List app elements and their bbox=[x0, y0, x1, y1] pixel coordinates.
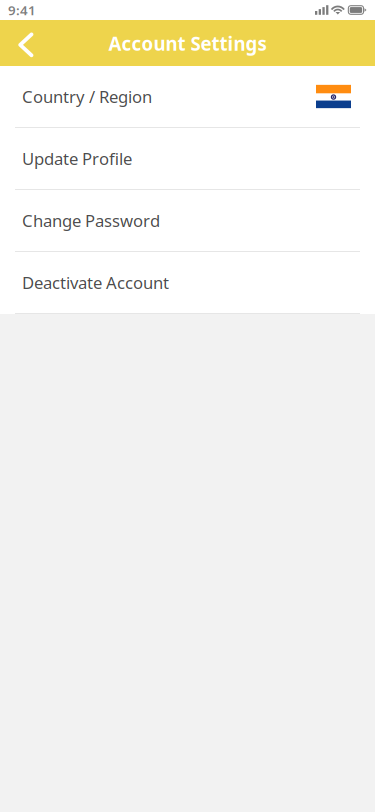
button[interactable]: Country / Region bbox=[0, 66, 375, 128]
staticText: Country / Region bbox=[22, 85, 152, 108]
staticText: Account Settings bbox=[108, 31, 266, 56]
button[interactable]: Update Profile bbox=[0, 128, 375, 190]
staticText: Update Profile bbox=[22, 147, 132, 170]
button[interactable]: Deactivate Account bbox=[0, 252, 375, 314]
staticText: 9:41 bbox=[8, 1, 36, 19]
staticText: Deactivate Account bbox=[22, 271, 169, 294]
button[interactable]: Change Password bbox=[0, 190, 375, 252]
staticText: Change Password bbox=[22, 209, 160, 232]
button[interactable]: Back bbox=[0, 20, 49, 66]
